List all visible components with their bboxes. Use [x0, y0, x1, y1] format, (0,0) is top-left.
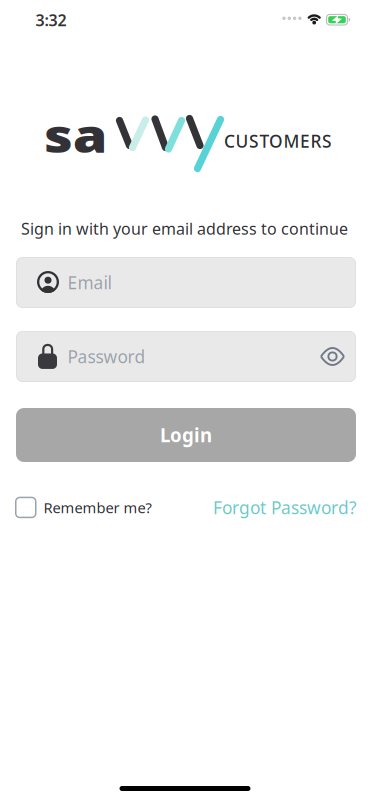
button[interactable]: Remember me?: [15, 497, 151, 518]
button[interactable]: Email: [16, 257, 356, 308]
staticText: Login: [160, 423, 212, 447]
button[interactable]: Forgot Password?: [213, 496, 357, 519]
staticText: Remember me?: [43, 498, 151, 517]
staticText: sa: [41, 95, 109, 175]
staticText: Password: [67, 345, 145, 368]
staticText: 3:32: [35, 9, 66, 31]
staticText: Sign in with your email address to conti…: [21, 218, 348, 239]
button[interactable]: Password: [16, 331, 356, 382]
staticText: Forgot Password?: [213, 496, 357, 519]
staticText: Email: [67, 271, 111, 294]
button[interactable]: [315, 339, 349, 373]
staticText: CUSTOMERS: [224, 129, 332, 152]
button[interactable]: Login: [16, 408, 356, 462]
